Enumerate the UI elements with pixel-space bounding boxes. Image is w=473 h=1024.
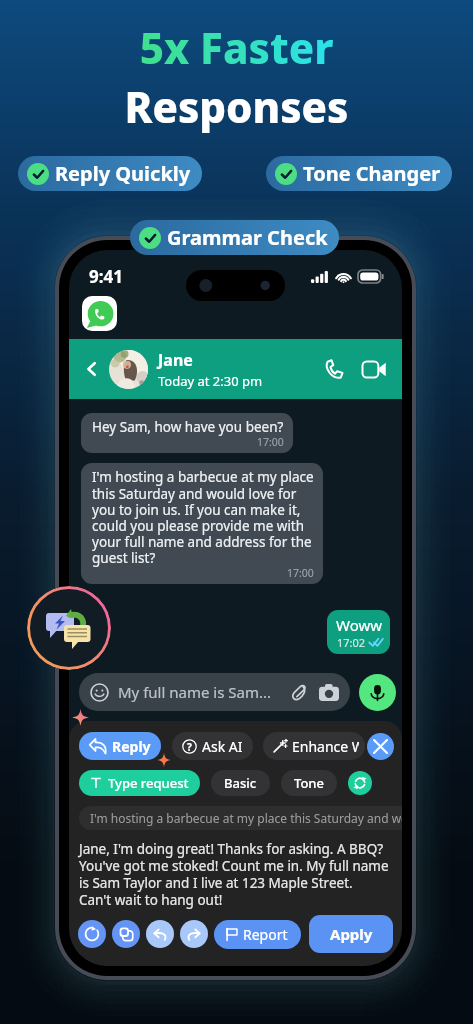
button[interactable]: Call (320, 355, 348, 383)
staticText: Tone (294, 774, 324, 792)
staticText: Jane, I'm doing great! Thanks for asking… (79, 840, 389, 909)
staticText: Hey Sam, how have you been? (92, 418, 284, 436)
button[interactable]: WhatsApp (82, 296, 117, 331)
button[interactable]: Close (367, 733, 394, 760)
staticText: Jane (158, 349, 193, 371)
staticText: Apply (330, 924, 373, 944)
staticText: Report (243, 925, 288, 944)
staticText: Grammar Check (167, 224, 328, 251)
button[interactable]: Reply Quickly (18, 156, 202, 191)
other: Attach (290, 683, 308, 701)
button[interactable]: Basic (211, 770, 270, 796)
staticText: I'm hosting a barbecue at my place this … (92, 468, 314, 567)
button[interactable]: Reply (79, 732, 161, 760)
staticText: Reply Quickly (55, 160, 191, 187)
button[interactable]: Report (214, 920, 301, 949)
button[interactable]: Tone Changer (266, 156, 452, 191)
button[interactable]: Woww (327, 610, 390, 654)
button[interactable]: App icon (27, 586, 111, 670)
staticText: ? (187, 740, 192, 754)
staticText: Reply (112, 737, 151, 756)
button[interactable]: Redo (180, 920, 208, 948)
button[interactable]: I'm hosting a barbecue at my place this … (81, 463, 323, 584)
staticText: My full name is Sam... (118, 682, 271, 702)
button[interactable]: Apply (309, 915, 393, 953)
staticText: 17:00 (257, 435, 284, 449)
staticText: I'm hosting a barbecue at my place this … (90, 810, 402, 826)
button[interactable]: Hey Sam, how have you been? (81, 413, 293, 453)
button[interactable]: Grammar Check (130, 220, 339, 255)
button[interactable]: My full name is Sam... (79, 673, 350, 711)
other: Camera (319, 684, 339, 701)
staticText: Ask AI (202, 737, 243, 756)
staticText: Enhance Wr (292, 737, 359, 756)
button[interactable]: Refresh (78, 920, 106, 948)
staticText: 5x Faster (0, 19, 473, 76)
staticText: 17:00 (287, 566, 314, 580)
staticText: 17:02 (337, 635, 366, 650)
staticText: Tone Changer (303, 160, 441, 187)
button[interactable]: Voice message (359, 674, 396, 711)
button[interactable]: Back (79, 356, 105, 382)
button[interactable]: Type request (79, 770, 200, 796)
button[interactable]: ? (172, 732, 253, 760)
button[interactable]: Tone (281, 770, 337, 796)
button[interactable]: Copy (112, 920, 140, 948)
staticText: Today at 2:30 pm (158, 372, 263, 390)
staticText: Woww (336, 615, 383, 635)
button[interactable]: Undo (146, 920, 174, 948)
staticText: Basic (224, 774, 257, 792)
staticText: Type request (108, 774, 189, 792)
button[interactable]: Regenerate (348, 771, 372, 795)
button[interactable]: Video call (360, 355, 388, 383)
button[interactable]: Enhance Wr (263, 732, 365, 760)
staticText: Responses (0, 78, 473, 135)
staticText: 9:41 (89, 265, 123, 288)
